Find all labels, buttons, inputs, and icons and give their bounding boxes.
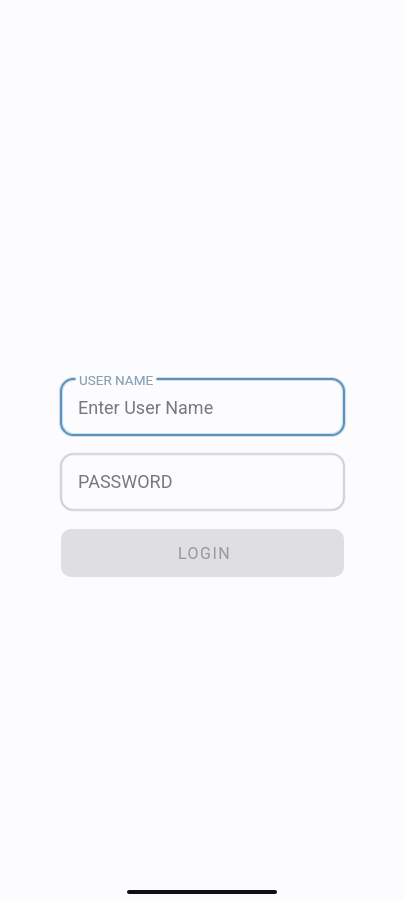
staticText: USER NAME <box>79 372 154 388</box>
staticText: PASSWORD <box>78 471 173 492</box>
staticText: Enter User Name <box>78 397 214 418</box>
button[interactable]: User name input field <box>61 370 344 435</box>
button[interactable]: Password input field <box>61 454 344 510</box>
staticText: LOGIN <box>178 544 232 563</box>
button[interactable]: LOGIN <box>61 529 344 577</box>
